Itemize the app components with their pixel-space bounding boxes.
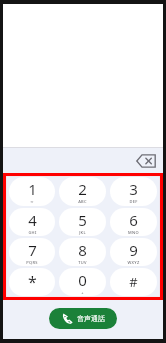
button[interactable]: 1 <box>9 177 55 206</box>
staticText: GHI <box>28 230 37 235</box>
button[interactable]: 4 <box>9 208 55 236</box>
button[interactable]: 6 <box>110 208 157 236</box>
staticText: 5 <box>78 210 87 230</box>
staticText: JKL <box>79 230 86 235</box>
staticText: ∞ <box>30 199 34 204</box>
button[interactable]: 5 <box>59 208 106 236</box>
button[interactable]: 音声通話 <box>49 308 117 329</box>
staticText: 3 <box>129 179 138 199</box>
staticText: + <box>81 290 84 295</box>
staticText: MNO <box>128 230 139 235</box>
staticText: 7 <box>28 240 37 260</box>
staticText: ABC <box>78 199 87 204</box>
staticText: 2 <box>78 179 87 199</box>
staticText: # <box>129 273 138 291</box>
button[interactable]: 3 <box>110 177 157 206</box>
button[interactable]: 7 <box>9 238 55 266</box>
staticText: 1 <box>28 179 37 199</box>
staticText: 0 <box>78 270 87 290</box>
staticText: 9 <box>129 240 138 260</box>
button[interactable]: # <box>110 268 157 296</box>
staticText: TUV <box>78 260 87 265</box>
button[interactable]: 2 <box>59 177 106 206</box>
staticText: 4 <box>28 210 37 230</box>
button[interactable]: Backspace <box>136 153 156 169</box>
staticText: PQRS <box>26 260 38 265</box>
staticText: * <box>28 271 37 293</box>
button[interactable]: 0 <box>59 268 106 296</box>
staticText: 8 <box>78 240 87 260</box>
staticText: DEF <box>129 199 138 204</box>
button[interactable]: 9 <box>110 238 157 266</box>
staticText: 音声通話 <box>77 314 105 323</box>
button[interactable]: * <box>9 268 55 296</box>
staticText: 6 <box>129 210 138 230</box>
staticText: WXYZ <box>127 260 140 265</box>
button[interactable]: 8 <box>59 238 106 266</box>
